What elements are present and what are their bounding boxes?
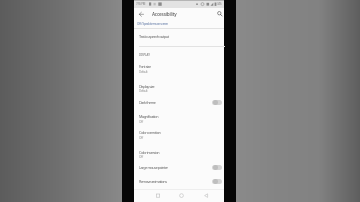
staticText: Text-to-speech output [139, 34, 169, 39]
button[interactable]: Color correction [134, 127, 224, 142]
button[interactable]: Color inversion [134, 146, 224, 161]
button[interactable] [175, 191, 187, 202]
button[interactable]: Font size [134, 61, 224, 77]
button[interactable]: Display size [134, 80, 224, 96]
button[interactable] [136, 10, 145, 19]
staticText: 34% [217, 2, 222, 6]
button[interactable]: Text-to-speech output [134, 30, 224, 45]
button[interactable]: Remove animations [134, 176, 224, 188]
button[interactable]: Off / Speak items on screen [134, 20, 224, 28]
button[interactable]: Large mouse pointer [134, 162, 224, 174]
staticText: Off [139, 136, 143, 140]
staticText: 7:55 PM [136, 2, 146, 6]
button[interactable]: Magnification [134, 111, 224, 126]
button[interactable] [216, 10, 224, 18]
staticText: Off [139, 120, 143, 124]
staticText: Font size [139, 64, 151, 69]
staticText: Color inversion [139, 150, 160, 155]
staticText: Off [139, 155, 143, 159]
staticText: Off / Speak items on screen [137, 22, 168, 26]
button[interactable] [212, 100, 222, 105]
staticText: Default [139, 70, 148, 74]
staticText: Default [139, 89, 148, 93]
button[interactable] [212, 179, 222, 184]
button[interactable] [212, 165, 222, 170]
button[interactable] [152, 191, 164, 202]
staticText: Dark theme [139, 100, 156, 105]
button[interactable]: Dark theme [134, 96, 224, 108]
button[interactable] [200, 191, 212, 202]
staticText: Color correction [139, 130, 161, 135]
staticText: Display size [139, 84, 155, 89]
staticText: DISPLAY [139, 53, 150, 57]
staticText: Accessibility [152, 11, 177, 17]
staticText: Magnification [139, 114, 159, 119]
staticText: Remove animations [139, 179, 167, 184]
staticText: Large mouse pointer [139, 165, 168, 170]
